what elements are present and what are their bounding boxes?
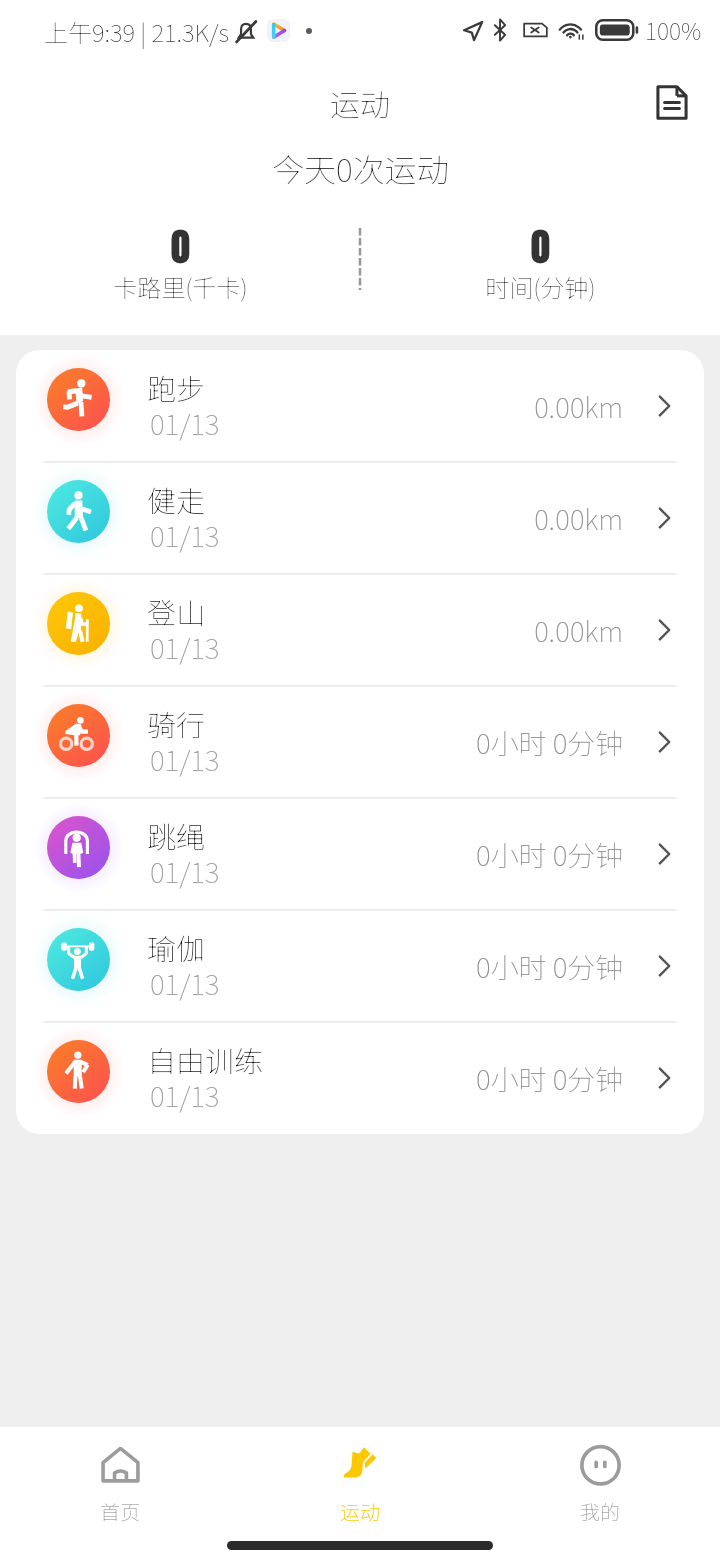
- staticText: 自由训练: [147, 1038, 264, 1080]
- button[interactable]: 骑行: [16, 686, 704, 798]
- staticText: 上午9:39 | 21.3K/s: [44, 14, 230, 49]
- staticText: 01/13: [150, 739, 220, 780]
- staticText: 0.00km: [534, 498, 624, 539]
- button[interactable]: 跳绳: [16, 798, 704, 910]
- staticText: 卡路里(千卡): [113, 269, 248, 304]
- staticText: 01/13: [150, 963, 220, 1004]
- staticText: 0小时 0分钟: [476, 834, 624, 875]
- staticText: 瑜伽: [147, 926, 206, 968]
- staticText: 01/13: [150, 1075, 220, 1116]
- staticText: 0: [531, 219, 550, 275]
- staticText: 跳绳: [147, 814, 206, 856]
- staticText: 0小时 0分钟: [476, 946, 624, 987]
- staticText: 骑行: [147, 702, 206, 744]
- staticText: 运动: [340, 1497, 380, 1526]
- button[interactable]: 跑步: [16, 350, 704, 462]
- staticText: 健走: [147, 478, 206, 520]
- staticText: 跑步: [147, 366, 206, 408]
- button[interactable]: 登山: [16, 574, 704, 686]
- staticText: 0.00km: [534, 610, 624, 651]
- staticText: 01/13: [150, 515, 220, 556]
- staticText: 01/13: [150, 851, 220, 892]
- button[interactable]: 运动: [240, 1427, 480, 1537]
- staticText: 时间(分钟): [485, 269, 596, 304]
- staticText: 01/13: [150, 627, 220, 668]
- button[interactable]: 自由训练: [16, 1022, 704, 1134]
- staticText: 100%: [645, 13, 702, 46]
- staticText: 0: [171, 219, 190, 275]
- staticText: 首页: [100, 1497, 140, 1526]
- button[interactable]: 运动记录: [640, 70, 704, 134]
- button[interactable]: 首页: [0, 1427, 240, 1537]
- staticText: 01/13: [150, 403, 220, 444]
- staticText: 0小时 0分钟: [476, 722, 624, 763]
- staticText: 登山: [147, 590, 206, 632]
- staticText: 我的: [580, 1497, 620, 1526]
- button[interactable]: 我的: [480, 1427, 720, 1537]
- button[interactable]: 健走: [16, 462, 704, 574]
- staticText: 0.00km: [534, 386, 624, 427]
- staticText: 运动: [330, 81, 390, 124]
- button[interactable]: 瑜伽: [16, 910, 704, 1022]
- staticText: 0小时 0分钟: [476, 1058, 624, 1099]
- staticText: 今天0次运动: [272, 145, 449, 191]
